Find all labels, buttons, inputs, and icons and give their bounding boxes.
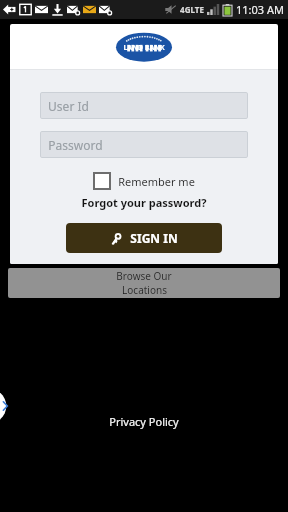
staticText: 11:03 AM [236,2,284,17]
button[interactable]: Forgot your password? [77,194,211,211]
button[interactable]: SIGN IN [66,223,222,253]
button[interactable]: User Id [40,92,248,119]
button[interactable]: Browse Our [8,268,280,298]
staticText: LAND BANK [123,43,165,53]
staticText: Password [48,137,103,153]
staticText: SIGN IN [130,230,178,246]
button[interactable]: Password [40,131,248,158]
staticText: Locations [122,283,167,297]
button[interactable]: Privacy Policy [103,412,185,431]
button[interactable]: Open side panel [0,385,13,427]
button[interactable]: Remember me [91,170,197,192]
staticText: Browse Our [116,269,172,283]
staticText: 4GLTE [180,4,204,15]
staticText: Remember me [118,174,195,189]
staticText: User Id [48,98,89,114]
